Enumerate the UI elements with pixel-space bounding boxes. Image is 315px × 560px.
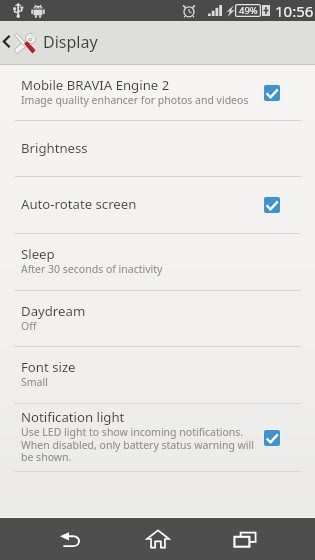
button[interactable]: Brightness [0,121,315,176]
button[interactable]: Daydream [0,291,315,346]
staticText: Mobile BRAVIA Engine 2 [21,76,170,94]
staticText: Brightness [21,139,88,157]
button[interactable]: Toggle setting [263,429,281,447]
staticText: Display [43,31,98,53]
button[interactable]: Toggle setting [263,84,281,102]
staticText: Image quality enhancer for photos and vi… [21,93,249,107]
button[interactable]: Toggle setting [263,196,281,214]
button[interactable]: Home [105,518,210,560]
staticText: Off [21,319,37,333]
button[interactable]: Recent apps [192,518,297,560]
staticText: Font size [21,358,76,376]
staticText: After 30 seconds of inactivity [21,262,163,276]
staticText: Auto-rotate screen [21,195,137,213]
button[interactable]: Font size [0,347,315,403]
button[interactable]: Auto-rotate screen [0,177,315,233]
staticText: Sleep [21,245,55,263]
button[interactable]: Sleep [0,234,315,290]
staticText: Daydream [21,302,86,320]
button[interactable]: Display [0,21,315,64]
button[interactable]: Back [18,518,123,560]
button[interactable]: Notification light [0,404,315,471]
staticText: 49% [239,4,258,17]
staticText: 10:56 [275,1,314,21]
staticText: Use LED light to show incoming notificat… [21,425,259,464]
staticText: Small [21,375,48,389]
staticText: Notification light [21,408,125,426]
button[interactable]: Mobile BRAVIA Engine 2 [0,65,315,120]
